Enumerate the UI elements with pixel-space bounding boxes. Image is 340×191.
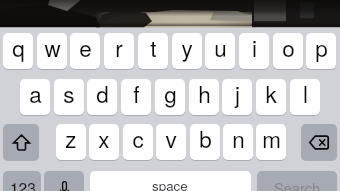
button[interactable]: y <box>172 33 202 69</box>
button[interactable]: v <box>156 124 186 160</box>
button[interactable]: z <box>56 124 86 160</box>
staticText: r <box>115 33 123 63</box>
button[interactable]: s <box>54 79 84 115</box>
button[interactable]: h <box>189 79 219 115</box>
staticText: space <box>152 176 188 191</box>
button[interactable]: u <box>205 33 235 69</box>
button[interactable]: l <box>290 79 320 115</box>
staticText: s <box>63 79 75 109</box>
staticText: z <box>65 124 77 154</box>
staticText: h <box>198 79 211 109</box>
button[interactable]: f <box>121 79 151 115</box>
button[interactable]: space <box>90 171 251 191</box>
staticText: t <box>150 33 157 63</box>
staticText: l <box>303 79 308 109</box>
button[interactable]: p <box>306 33 336 69</box>
staticText: p <box>315 33 328 63</box>
button[interactable]: k <box>256 79 286 115</box>
staticText: n <box>232 124 245 154</box>
staticText: u <box>214 33 227 63</box>
staticText: a <box>29 79 42 109</box>
button[interactable]: t <box>138 33 168 69</box>
staticText: o <box>282 33 295 63</box>
staticText: f <box>133 79 140 109</box>
staticText: i <box>252 33 257 63</box>
staticText: b <box>199 124 212 154</box>
button[interactable]: Shift <box>3 124 39 160</box>
button[interactable]: w <box>37 33 67 69</box>
button[interactable]: c <box>123 124 153 160</box>
button[interactable]: d <box>87 79 117 115</box>
button[interactable]: i <box>239 33 269 69</box>
button[interactable]: g <box>155 79 185 115</box>
button[interactable]: Dictate <box>44 171 84 191</box>
button[interactable]: r <box>104 33 134 69</box>
button[interactable]: n <box>223 124 253 160</box>
button[interactable]: o <box>273 33 303 69</box>
staticText: Search <box>274 177 321 191</box>
staticText: d <box>96 79 109 109</box>
staticText: w <box>44 33 61 63</box>
staticText: y <box>181 33 193 63</box>
staticText: q <box>12 33 25 63</box>
button[interactable]: Search <box>257 171 337 191</box>
button[interactable]: b <box>190 124 220 160</box>
button[interactable]: Numbers <box>3 171 41 191</box>
button[interactable]: m <box>256 124 286 160</box>
button[interactable]: q <box>3 33 33 69</box>
staticText: g <box>164 79 177 109</box>
button[interactable]: Delete <box>301 124 337 160</box>
staticText: c <box>132 124 144 154</box>
button[interactable]: j <box>222 79 252 115</box>
staticText: k <box>265 79 277 109</box>
button[interactable]: x <box>89 124 119 160</box>
staticText: e <box>79 33 92 63</box>
button[interactable]: a <box>20 79 50 115</box>
staticText: v <box>165 124 177 154</box>
staticText: 123 <box>10 176 36 191</box>
staticText: m <box>262 124 281 154</box>
button[interactable]: e <box>70 33 100 69</box>
staticText: x <box>98 124 110 154</box>
staticText: j <box>235 79 240 109</box>
